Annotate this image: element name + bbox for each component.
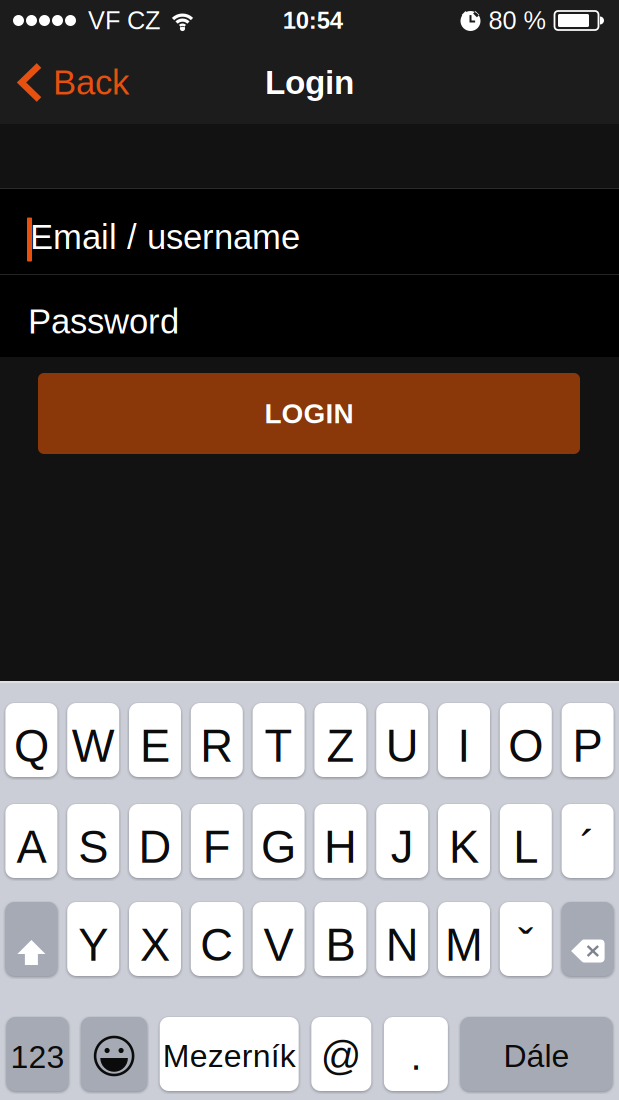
button[interactable]: D [129,804,181,878]
button[interactable]: LOGIN [38,373,580,454]
button[interactable]: B [314,902,366,976]
button[interactable]: E [129,703,181,777]
button[interactable]: O [500,703,552,777]
staticText: . [410,1034,421,1078]
staticText: P [573,721,603,771]
button[interactable]: ´ [562,804,614,878]
button[interactable]: Back [0,51,143,113]
staticText: J [391,822,414,872]
staticText: ´ [580,822,595,872]
staticText: VF CZ [88,6,160,35]
staticText: Y [78,920,108,970]
staticText: Email / username [30,218,300,256]
button[interactable]: Email / username [0,189,619,274]
staticText: D [138,822,171,872]
button[interactable]: Password [0,275,619,357]
button[interactable]: I [438,703,490,777]
button[interactable]: A [5,804,57,878]
staticText: I [457,721,470,771]
button[interactable]: @ [311,1017,371,1091]
button[interactable]: N [376,902,428,976]
button[interactable]: Y [67,902,119,976]
staticText: U [386,721,419,771]
staticText: 123 [10,1039,64,1075]
button[interactable]: V [253,902,305,976]
staticText: Mezerník [163,1038,296,1074]
staticText: Login [265,64,354,101]
button[interactable]: Shift [5,902,57,976]
staticText: 80 % [488,6,546,35]
staticText: S [78,822,108,872]
button[interactable]: Dále [460,1017,612,1091]
button[interactable]: J [376,804,428,878]
staticText: Q [14,721,49,771]
staticText: G [261,822,296,872]
staticText: A [16,822,46,872]
button[interactable]: L [500,804,552,878]
staticText: F [203,822,231,872]
button[interactable]: K [438,804,490,878]
staticText: LOGIN [264,398,353,429]
button[interactable]: ˇ [500,902,552,976]
button[interactable]: Mezerník [160,1017,299,1091]
staticText: T [265,721,293,771]
staticText: Dále [503,1038,569,1074]
button[interactable]: X [129,902,181,976]
staticText: 10:54 [283,7,343,34]
staticText: K [449,822,479,872]
staticText: W [72,721,115,771]
button[interactable]: T [253,703,305,777]
button[interactable]: M [438,902,490,976]
staticText: N [386,920,419,970]
staticText: E [140,721,170,771]
staticText: ˇ [518,920,533,970]
staticText: M [445,920,483,970]
staticText: Password [28,302,179,341]
staticText: Z [326,721,354,771]
staticText: O [508,721,543,771]
button[interactable]: F [191,804,243,878]
button[interactable]: Emoji keyboard [81,1017,147,1091]
staticText: H [324,822,357,872]
button[interactable]: Q [5,703,57,777]
button[interactable]: H [314,804,366,878]
staticText: L [513,822,538,872]
staticText: C [200,920,233,970]
staticText: R [200,721,233,771]
staticText: V [264,920,294,970]
button[interactable]: P [562,703,614,777]
button[interactable]: U [376,703,428,777]
button[interactable]: W [67,703,119,777]
staticText: X [140,920,170,970]
button[interactable]: S [67,804,119,878]
button[interactable]: Z [314,703,366,777]
button[interactable]: Backspace [562,902,614,976]
button[interactable]: G [253,804,305,878]
staticText: Back [53,63,129,102]
button[interactable]: . [384,1017,448,1091]
staticText: @ [321,1034,362,1078]
staticText: B [325,920,355,970]
button[interactable]: R [191,703,243,777]
button[interactable]: C [191,902,243,976]
button[interactable]: 123 [6,1017,68,1091]
